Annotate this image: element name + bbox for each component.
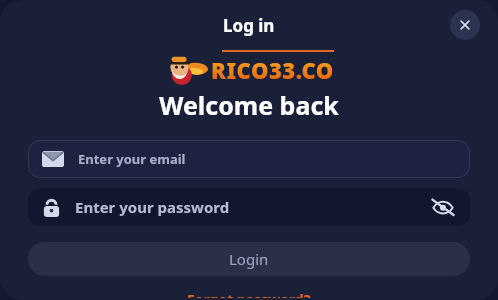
staticText: Login <box>229 249 269 269</box>
button[interactable]: Enter your password <box>28 188 470 226</box>
button[interactable]: Login <box>28 242 470 276</box>
staticText: RICO33.CO <box>211 55 334 85</box>
staticText: Enter your email <box>78 150 186 168</box>
button[interactable]: Forgot password? <box>179 288 319 300</box>
button[interactable]: Show password <box>430 194 456 220</box>
button[interactable]: Enter your email <box>28 140 470 178</box>
staticText: Forgot password? <box>187 290 311 298</box>
staticText: Enter your password <box>75 197 430 217</box>
staticText: Welcome back <box>0 88 498 122</box>
staticText: Log in <box>223 14 275 37</box>
button[interactable]: Close <box>450 10 480 40</box>
